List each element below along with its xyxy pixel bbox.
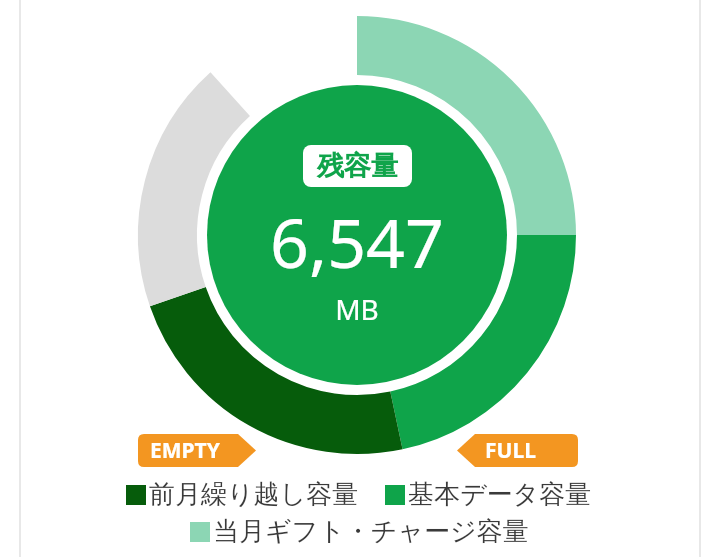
staticText: 6,547 <box>270 195 444 288</box>
button[interactable]: EMPTY <box>138 434 256 467</box>
staticText: 当月ギフト・チャージ容量 <box>213 515 529 548</box>
button[interactable]: 前月繰り越し容量 <box>126 478 359 511</box>
button[interactable]: Remaining data capacity chart <box>0 0 718 557</box>
staticText: MB <box>335 290 379 328</box>
staticText: FULL <box>485 436 536 465</box>
staticText: EMPTY <box>150 436 220 465</box>
button[interactable]: 当月ギフト・チャージ容量 <box>190 515 529 548</box>
staticText: 残容量 <box>317 149 398 183</box>
staticText: 基本データ容量 <box>408 478 592 511</box>
button[interactable]: 基本データ容量 <box>385 478 592 511</box>
staticText: 前月繰り越し容量 <box>149 478 359 511</box>
button[interactable]: FULL <box>457 434 578 467</box>
